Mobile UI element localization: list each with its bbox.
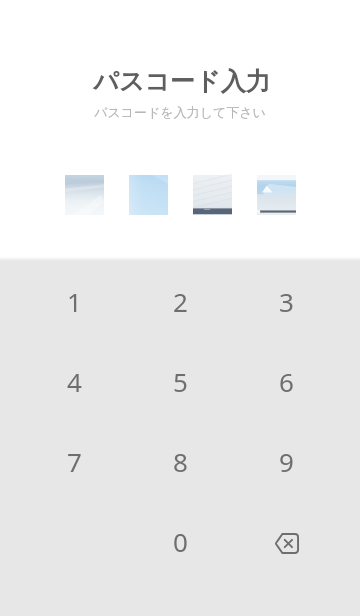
- staticText: パスコード入力: [2, 66, 360, 97]
- staticText: 8: [173, 444, 188, 479]
- staticText: 4: [67, 364, 82, 399]
- staticText: 6: [279, 364, 294, 399]
- staticText: パスコードを入力して下さい: [0, 104, 360, 120]
- button[interactable]: 5: [145, 346, 215, 416]
- button[interactable]: 3: [251, 266, 321, 336]
- button[interactable]: 6: [251, 346, 321, 416]
- button[interactable]: 7: [39, 426, 109, 496]
- staticText: 2: [173, 284, 188, 319]
- button[interactable]: 1: [39, 266, 109, 336]
- staticText: 7: [67, 444, 82, 479]
- staticText: 5: [173, 364, 188, 399]
- button[interactable]: 2: [145, 266, 215, 336]
- staticText: 9: [279, 444, 294, 479]
- button[interactable]: 9: [251, 426, 321, 496]
- button[interactable]: 4: [39, 346, 109, 416]
- button[interactable]: Delete: [251, 506, 321, 576]
- staticText: 3: [279, 284, 294, 319]
- staticText: 0: [173, 524, 188, 559]
- button[interactable]: 8: [145, 426, 215, 496]
- staticText: 1: [67, 284, 82, 319]
- button[interactable]: 0: [145, 506, 215, 576]
